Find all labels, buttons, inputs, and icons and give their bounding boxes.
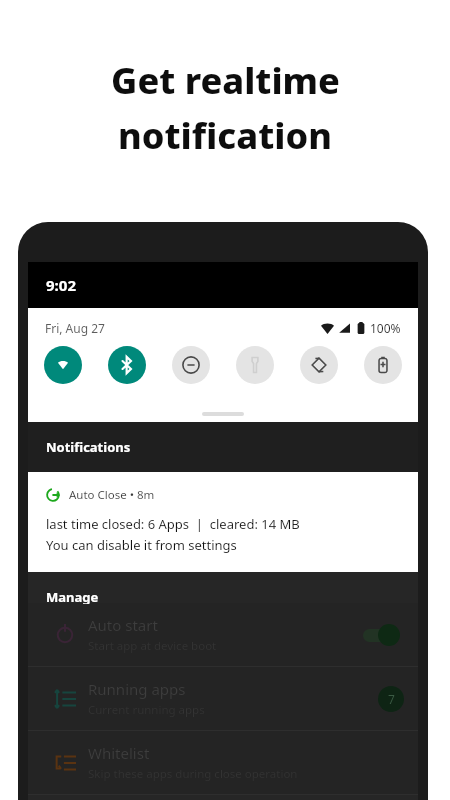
- staticText: 100%: [370, 320, 401, 336]
- button[interactable]: Auto start: [28, 603, 418, 666]
- staticText: Whitelist: [88, 743, 150, 763]
- staticText: 9:02: [46, 275, 76, 295]
- button[interactable]: Running apps: [28, 667, 418, 730]
- staticText: notification: [118, 111, 332, 160]
- staticText: Skip these apps during close operation: [88, 766, 298, 782]
- staticText: 7: [388, 691, 395, 707]
- button[interactable]: Flashlight: [236, 346, 274, 384]
- staticText: Fri, Aug 27: [45, 320, 105, 336]
- staticText: Start app at device boot: [88, 638, 217, 654]
- button[interactable]: Whitelist: [28, 731, 418, 794]
- staticText: Auto Close • 8m: [69, 487, 155, 503]
- staticText: Current running apps: [88, 702, 205, 718]
- button[interactable]: Bluetooth: [108, 346, 146, 384]
- button[interactable]: Wi-Fi: [44, 346, 82, 384]
- staticText: Get realtime: [111, 56, 340, 105]
- button[interactable]: Battery saver: [364, 346, 402, 384]
- staticText: last time closed: 6 Apps | cleared: 14 M…: [46, 515, 300, 533]
- button[interactable]: Manage: [46, 588, 99, 604]
- staticText: You can disable it from settings: [46, 536, 237, 554]
- button[interactable]: Do not disturb: [172, 346, 210, 384]
- button[interactable]: Auto Close • 8m: [28, 472, 418, 572]
- button[interactable]: [358, 622, 404, 648]
- staticText: Running apps: [88, 679, 186, 699]
- staticText: Auto start: [88, 615, 158, 635]
- button[interactable]: Auto rotate: [300, 346, 338, 384]
- staticText: Notifications: [46, 438, 131, 456]
